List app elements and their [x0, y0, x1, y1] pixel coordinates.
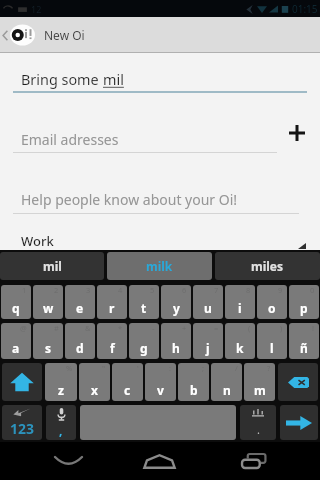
- staticText: 9: [278, 285, 283, 295]
- button[interactable]: +: [161, 323, 191, 359]
- button[interactable]: ": [79, 363, 110, 401]
- staticText: y: [173, 300, 180, 316]
- button[interactable]: *: [97, 323, 127, 359]
- staticText: b: [190, 382, 198, 398]
- staticText: 123: [10, 419, 35, 438]
- staticText: i: [238, 300, 242, 316]
- staticText: f: [110, 340, 115, 356]
- staticText: n: [223, 382, 231, 398]
- staticText: l: [270, 340, 274, 356]
- staticText: c: [124, 382, 131, 398]
- button[interactable]: (: [225, 323, 255, 359]
- button[interactable]: Enter: [280, 405, 318, 440]
- button[interactable]: Bring some: [0, 65, 320, 94]
- staticText: z: [58, 382, 64, 398]
- staticText: ): [280, 323, 283, 333]
- button[interactable]: 3: [65, 285, 95, 319]
- staticText: j: [206, 340, 210, 356]
- button[interactable]: Add email address: [280, 116, 314, 150]
- staticText: 5: [150, 285, 155, 295]
- staticText: o: [268, 300, 276, 316]
- button[interactable]: %: [45, 363, 77, 401]
- staticText: p: [300, 300, 308, 316]
- button[interactable]: 1: [1, 285, 31, 319]
- button[interactable]: Backspace: [278, 363, 318, 401]
- button[interactable]: Help people know about your Oi!: [0, 185, 320, 213]
- button[interactable]: Email adresses: [0, 125, 278, 153]
- button[interactable]: &: [65, 323, 95, 359]
- button[interactable]: /: [211, 363, 242, 401]
- button[interactable]: Recent apps: [230, 442, 278, 480]
- button[interactable]: -: [129, 323, 159, 359]
- staticText: q: [12, 300, 20, 316]
- button[interactable]: ': [112, 363, 143, 401]
- staticText: #: [54, 323, 59, 333]
- staticText: .: [257, 422, 260, 437]
- staticText: m: [254, 382, 266, 398]
- staticText: Bring some: [21, 70, 103, 90]
- button[interactable]: Period: [240, 405, 276, 440]
- button[interactable]: Symbols: [2, 405, 42, 440]
- staticText: s: [45, 340, 52, 356]
- button[interactable]: !: [289, 323, 319, 359]
- button[interactable]: Work: [0, 231, 320, 250]
- button[interactable]: :: [145, 363, 176, 401]
- button[interactable]: ): [257, 323, 287, 359]
- button[interactable]: Hide keyboard: [44, 442, 92, 480]
- button[interactable]: 6: [161, 285, 191, 319]
- staticText: v: [157, 382, 164, 398]
- staticText: h: [172, 340, 180, 356]
- button[interactable]: 8: [225, 285, 255, 319]
- staticText: ñ: [300, 340, 308, 356]
- button[interactable]: Navigate up: [0, 17, 320, 53]
- staticText: mil: [103, 70, 124, 90]
- button[interactable]: @: [1, 323, 31, 359]
- staticText: ,: [59, 422, 63, 438]
- button[interactable]: Shift: [2, 363, 42, 401]
- button[interactable]: =: [193, 323, 223, 359]
- button[interactable]: 9: [257, 285, 287, 319]
- button[interactable]: 2: [33, 285, 63, 319]
- button[interactable]: 0: [289, 285, 319, 319]
- staticText: 8: [246, 285, 251, 295]
- staticText: 12: [31, 3, 42, 15]
- staticText: &: [85, 323, 91, 333]
- button[interactable]: ;: [178, 363, 209, 401]
- button[interactable]: mil: [0, 252, 104, 280]
- staticText: g: [140, 340, 148, 356]
- button[interactable]: 5: [129, 285, 159, 319]
- staticText: u: [204, 300, 212, 316]
- staticText: milk: [146, 258, 173, 274]
- button[interactable]: 4: [97, 285, 127, 319]
- button[interactable]: Voice input: [46, 405, 76, 440]
- staticText: t: [141, 300, 147, 316]
- staticText: Work: [21, 232, 54, 250]
- button[interactable]: ?: [244, 363, 275, 401]
- button[interactable]: #: [33, 323, 63, 359]
- button[interactable]: milk: [107, 252, 212, 280]
- button[interactable]: Space: [80, 405, 236, 440]
- staticText: x: [91, 382, 98, 398]
- staticText: 0: [310, 285, 315, 295]
- button[interactable]: 7: [193, 285, 223, 319]
- staticText: w: [43, 300, 54, 316]
- staticText: d: [76, 340, 84, 356]
- staticText: 01:15: [292, 2, 318, 16]
- button[interactable]: miles: [215, 252, 320, 280]
- button[interactable]: Home: [135, 442, 183, 480]
